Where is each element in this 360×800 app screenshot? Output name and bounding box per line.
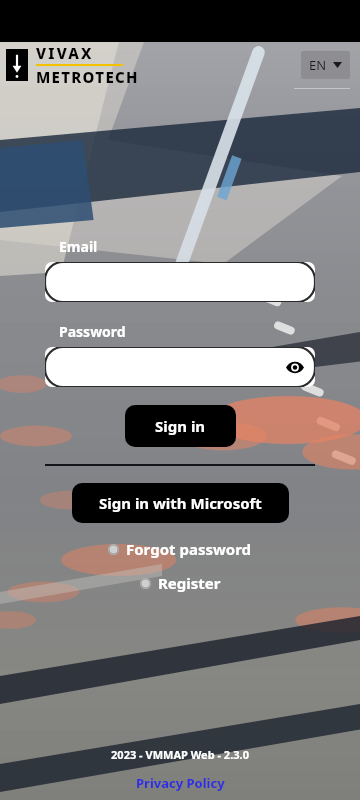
staticText: VIVAX <box>36 43 94 63</box>
staticText: Sign in with Microsoft <box>99 493 262 513</box>
button[interactable]: Forgot password <box>104 537 256 561</box>
button[interactable] <box>45 262 315 302</box>
button[interactable]: Show password <box>282 354 308 380</box>
button[interactable]: Privacy Policy <box>136 774 225 792</box>
staticText: Sign in <box>155 416 206 436</box>
staticText: Email <box>59 237 98 256</box>
staticText: Privacy Policy <box>136 774 225 792</box>
staticText: Register <box>158 573 221 593</box>
button[interactable]: EN <box>301 51 350 79</box>
staticText: EN <box>309 56 327 74</box>
staticText: METROTECH <box>36 67 139 87</box>
staticText: 2023 - VMMAP Web - 2.3.0 <box>0 747 360 762</box>
button[interactable]: Sign in <box>125 405 236 447</box>
button[interactable]: Show password <box>45 347 315 387</box>
button[interactable]: Sign in with Microsoft <box>72 483 289 523</box>
staticText: Forgot password <box>126 539 252 559</box>
button[interactable]: Register <box>136 571 225 595</box>
staticText: Password <box>59 322 126 341</box>
